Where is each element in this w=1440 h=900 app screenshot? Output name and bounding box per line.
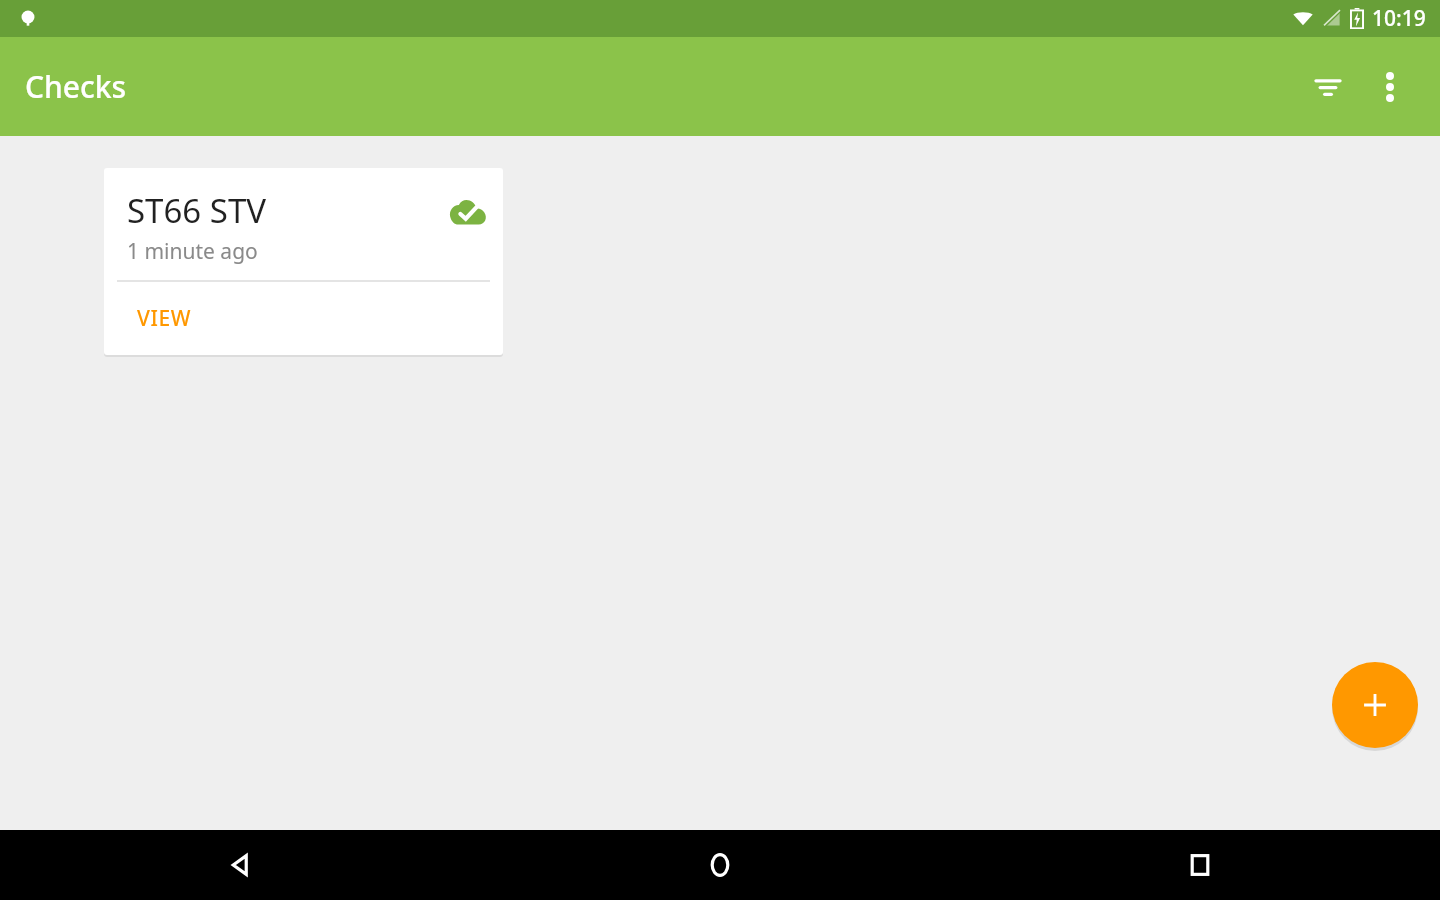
staticText: 10:19 bbox=[1372, 4, 1426, 33]
button[interactable]: ST66 STV bbox=[104, 168, 503, 355]
staticText: ST66 STV bbox=[127, 188, 267, 233]
button[interactable]: Add check bbox=[1332, 662, 1418, 748]
button[interactable]: VIEW bbox=[121, 290, 208, 347]
button[interactable]: Home bbox=[480, 830, 960, 900]
button[interactable]: More options bbox=[1362, 59, 1418, 115]
staticText: Checks bbox=[25, 66, 127, 107]
button[interactable]: Filter bbox=[1300, 59, 1356, 115]
staticText: 1 minute ago bbox=[127, 237, 258, 266]
button[interactable]: Back bbox=[0, 830, 480, 900]
staticText: VIEW bbox=[137, 304, 192, 333]
button[interactable]: Recent apps bbox=[960, 830, 1440, 900]
